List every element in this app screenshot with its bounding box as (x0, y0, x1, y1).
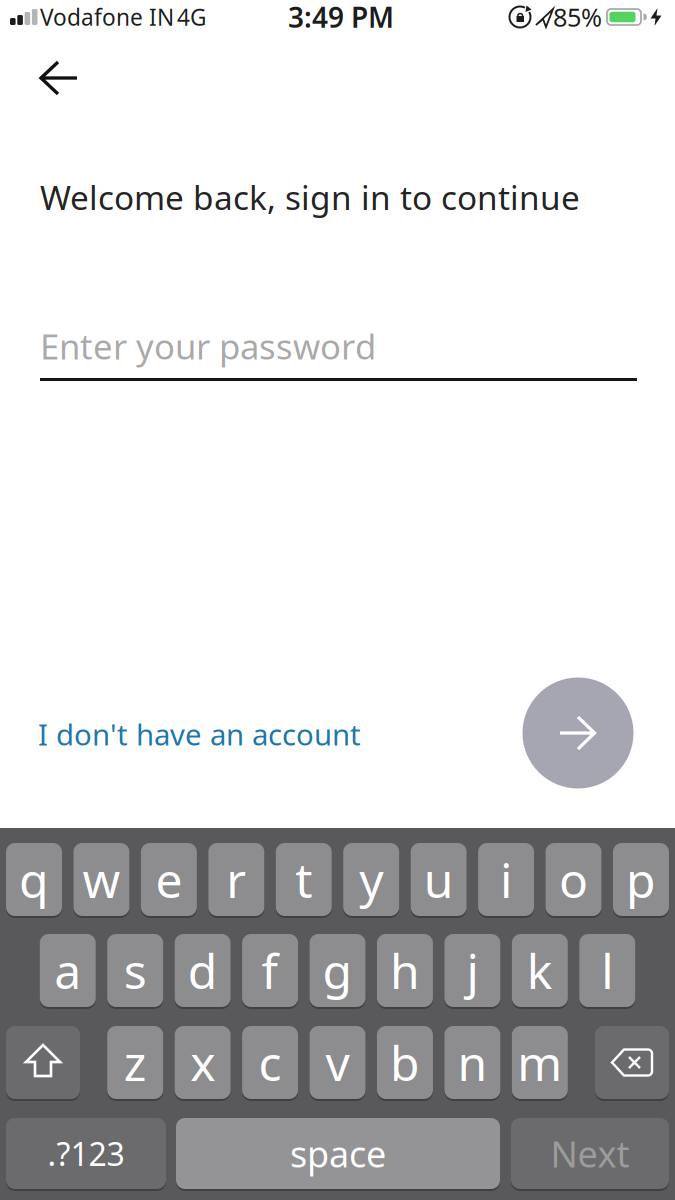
button[interactable]: z (107, 1026, 163, 1099)
staticText: a (54, 939, 81, 1002)
staticText: space (290, 1130, 386, 1177)
staticText: I don't have an account (38, 714, 361, 753)
button[interactable]: y (343, 843, 399, 916)
staticText: v (325, 1031, 349, 1094)
button[interactable]: s (107, 934, 163, 1007)
staticText: r (226, 848, 246, 911)
staticText: y (359, 848, 383, 911)
staticText: Next (550, 1130, 629, 1177)
button[interactable]: b (377, 1026, 433, 1099)
staticText: 85% (553, 0, 602, 34)
staticText: i (500, 848, 512, 911)
staticText: w (82, 848, 120, 911)
button[interactable]: I don't have an account (38, 714, 361, 753)
staticText: c (259, 1031, 282, 1094)
staticText: d (188, 939, 218, 1002)
staticText: k (527, 939, 553, 1002)
staticText: e (155, 848, 182, 911)
button[interactable]: Shift (6, 1026, 80, 1099)
staticText: n (457, 1031, 487, 1094)
button[interactable]: h (377, 934, 433, 1007)
staticText: f (262, 939, 279, 1002)
staticText: q (19, 848, 49, 911)
staticText: g (322, 939, 352, 1002)
button[interactable]: space (176, 1118, 500, 1189)
staticText: 3:49 PM (288, 0, 394, 36)
button[interactable]: o (545, 843, 601, 916)
button[interactable]: l (579, 934, 635, 1007)
staticText: u (424, 848, 454, 911)
button[interactable]: q (6, 843, 62, 916)
button[interactable]: r (208, 843, 264, 916)
staticText: m (517, 1031, 562, 1094)
button[interactable]: a (40, 934, 96, 1007)
button[interactable]: m (512, 1026, 568, 1099)
button[interactable]: e (141, 843, 197, 916)
button[interactable]: .?123 (6, 1118, 166, 1189)
button[interactable]: n (444, 1026, 500, 1099)
button[interactable]: j (444, 934, 500, 1007)
button[interactable]: f (242, 934, 298, 1007)
staticText: b (390, 1031, 420, 1094)
button[interactable]: x (175, 1026, 231, 1099)
button[interactable]: p (613, 843, 669, 916)
button[interactable]: d (175, 934, 231, 1007)
staticText: .?123 (47, 1132, 124, 1175)
staticText: j (466, 939, 478, 1002)
staticText: l (601, 939, 613, 1002)
button[interactable]: Delete (595, 1026, 669, 1099)
button[interactable]: u (411, 843, 467, 916)
button[interactable]: v (309, 1026, 365, 1099)
staticText: p (626, 848, 656, 911)
button[interactable]: Back (29, 50, 89, 106)
staticText: s (124, 939, 147, 1002)
staticText: Vodafone IN (40, 2, 174, 32)
button[interactable]: k (512, 934, 568, 1007)
button[interactable]: w (73, 843, 129, 916)
button[interactable]: g (309, 934, 365, 1007)
staticText: h (390, 939, 420, 1002)
staticText: o (559, 848, 588, 911)
button[interactable]: Next (522, 677, 633, 788)
staticText: x (190, 1031, 215, 1094)
button[interactable]: t (276, 843, 332, 916)
staticText: t (295, 848, 312, 911)
button[interactable]: Next (511, 1118, 669, 1189)
staticText: Welcome back, sign in to continue (40, 175, 580, 219)
button[interactable]: i (478, 843, 534, 916)
button[interactable]: c (242, 1026, 298, 1099)
staticText: z (124, 1031, 147, 1094)
staticText: Enter your password (40, 323, 376, 369)
staticText: 4G (177, 2, 207, 32)
